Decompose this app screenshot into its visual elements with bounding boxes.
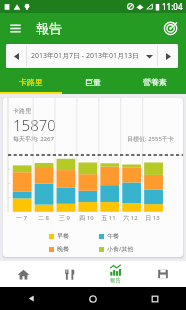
button[interactable]: 巨量: [62, 69, 124, 94]
button[interactable]: Recents: [124, 287, 186, 310]
button[interactable]: Home: [62, 287, 124, 310]
staticText: 巨量: [85, 77, 101, 87]
button[interactable]: Reports: [92, 261, 139, 287]
button[interactable]: Previous week: [6, 44, 26, 68]
button[interactable]: Home: [0, 261, 46, 287]
button[interactable]: 卡路里: [0, 69, 62, 94]
staticText: 每天平均: 2267: [13, 135, 54, 143]
button[interactable]: 營養素: [124, 69, 186, 94]
button[interactable]: Back: [0, 287, 62, 310]
staticText: 2013年01月7日 - 2013年01月13日: [31, 51, 139, 61]
staticText: 15870: [13, 115, 56, 135]
staticText: 營養素: [143, 77, 167, 87]
staticText: 早餐: [57, 232, 69, 240]
button[interactable]: Food: [46, 261, 92, 287]
button[interactable]: Goals: [156, 13, 186, 43]
staticText: 報告: [110, 277, 121, 284]
staticText: 卡路里: [19, 77, 43, 87]
button[interactable]: 2013年01月7日 - 2013年01月13日: [27, 44, 157, 68]
staticText: 晚餐: [57, 245, 69, 253]
staticText: 三 9: [59, 214, 70, 222]
staticText: 五 11: [101, 214, 116, 222]
button[interactable]: More: [139, 261, 186, 287]
staticText: 日 13: [145, 214, 160, 222]
staticText: 卡路里: [13, 107, 31, 115]
staticText: 報告: [36, 20, 62, 36]
button[interactable]: Menu: [0, 13, 30, 43]
staticText: 二 8: [38, 214, 49, 222]
button[interactable]: Next week: [158, 44, 178, 68]
staticText: 11:04: [162, 1, 183, 12]
staticText: 四 10: [79, 214, 94, 222]
staticText: 午餐: [107, 232, 119, 240]
staticText: 一 7: [16, 214, 27, 222]
staticText: 六 12: [123, 214, 138, 222]
staticText: 小食/其他: [107, 245, 134, 253]
staticText: 目標值: 2555千卡: [127, 135, 174, 143]
